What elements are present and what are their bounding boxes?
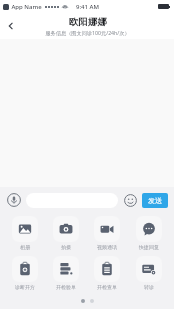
button[interactable]: 开检验单 [45, 255, 86, 291]
staticText: 快捷回复 [139, 244, 159, 250]
staticText: 视频通话 [97, 244, 117, 250]
button[interactable]: 转诊 [128, 255, 170, 291]
staticText: 开检查单 [97, 284, 117, 290]
button[interactable]: Emoji [122, 192, 138, 208]
button[interactable]: 视频通话 [86, 215, 128, 251]
staticText: 9:41 AM [76, 3, 99, 11]
button[interactable]: Voice input [6, 192, 22, 208]
button[interactable]: 相册 [4, 215, 45, 251]
staticText: 拍摄 [61, 244, 71, 250]
staticText: 服务信息（图文问诊100元/24h/次） [45, 29, 130, 36]
button[interactable]: 开检查单 [86, 255, 128, 291]
button[interactable]: Back [0, 15, 22, 37]
button[interactable]: 发送 [142, 193, 168, 208]
staticText: 转诊 [144, 284, 154, 290]
button[interactable]: 拍摄 [45, 215, 86, 251]
staticText: 开检验单 [56, 284, 76, 290]
staticText: 发送 [148, 196, 162, 205]
button[interactable]: 诊断开方 [4, 255, 45, 291]
staticText: 相册 [20, 244, 30, 250]
staticText: App Name [11, 3, 42, 11]
staticText: 诊断开方 [15, 284, 35, 290]
button[interactable]: 快捷回复 [128, 215, 170, 251]
staticText: 欧阳娜娜 [69, 16, 107, 28]
